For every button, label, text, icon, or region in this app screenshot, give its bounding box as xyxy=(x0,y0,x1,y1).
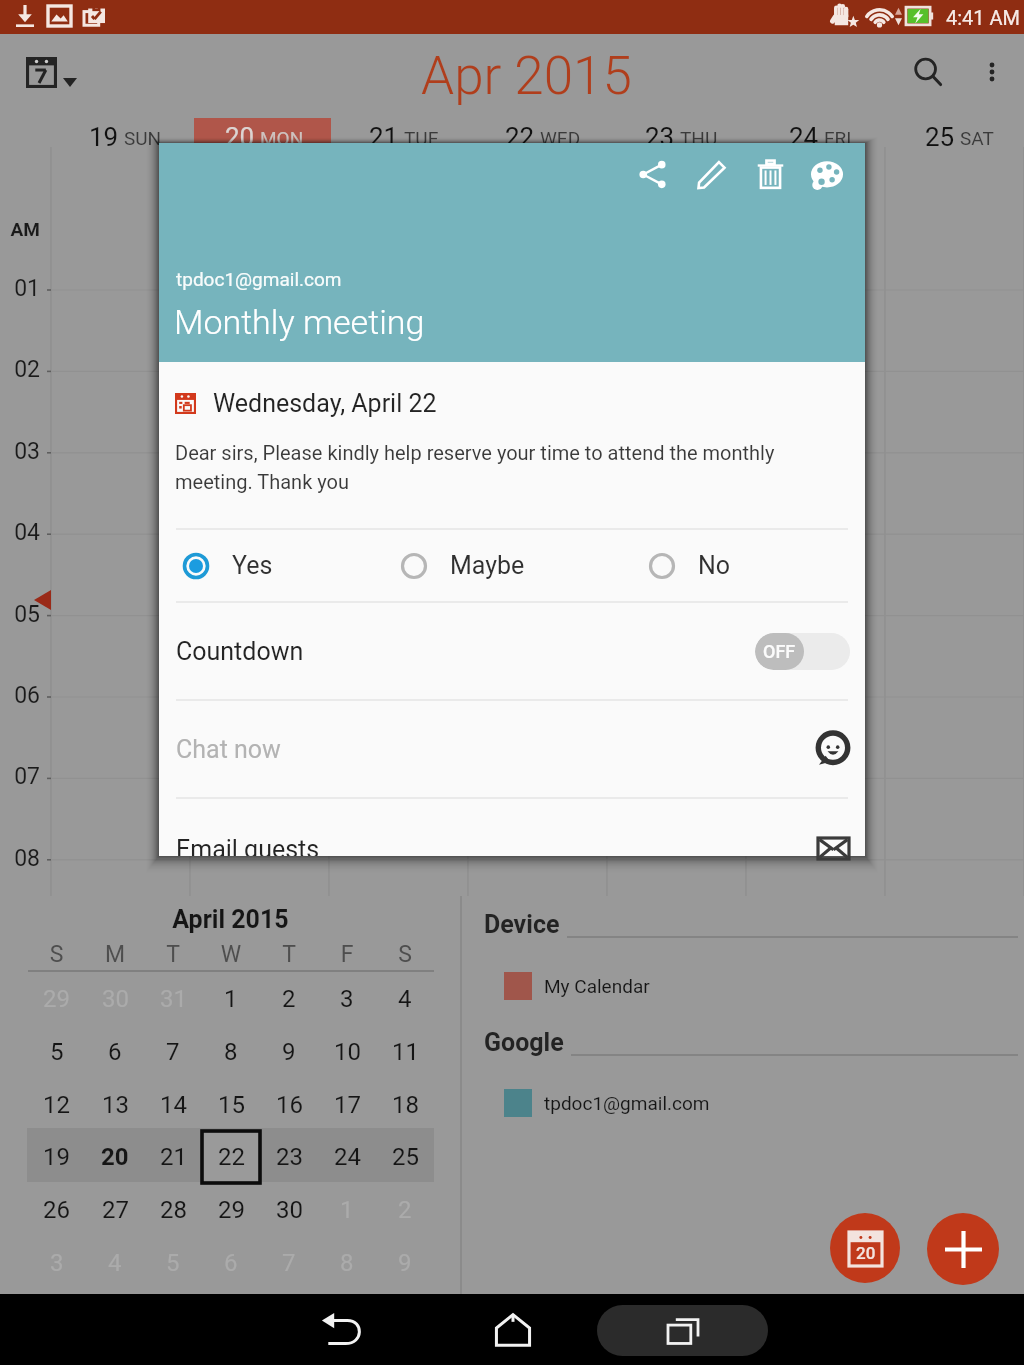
staticText: S xyxy=(27,941,86,968)
button[interactable]: Maybe xyxy=(397,529,597,602)
button[interactable]: 22 xyxy=(473,122,612,150)
button[interactable]: Add event xyxy=(927,1213,999,1285)
staticText: SAT xyxy=(960,127,994,149)
staticText: S xyxy=(376,941,434,968)
button[interactable]: Delete xyxy=(742,146,798,202)
button[interactable]: Recent apps xyxy=(597,1305,768,1356)
staticText: 13 xyxy=(102,1091,129,1119)
button[interactable]: 20 xyxy=(86,1131,144,1183)
staticText: 04 xyxy=(0,519,40,546)
button[interactable]: 19 xyxy=(56,122,195,150)
button[interactable]: 6 xyxy=(86,1026,144,1078)
button[interactable]: 23 xyxy=(612,122,751,150)
button[interactable]: 10 xyxy=(318,1026,376,1078)
button[interactable]: 21 xyxy=(144,1131,202,1183)
button[interactable]: 30 xyxy=(86,973,144,1025)
button[interactable]: No xyxy=(645,529,795,602)
button[interactable]: Email guests xyxy=(159,798,865,856)
button[interactable]: 17 xyxy=(318,1079,376,1131)
button[interactable]: tpdoc1@gmail.com xyxy=(483,1081,983,1125)
staticText: 31 xyxy=(160,985,187,1013)
button[interactable]: 11 xyxy=(376,1026,434,1078)
staticText: 21 xyxy=(369,122,399,150)
button[interactable]: 25 xyxy=(376,1131,434,1183)
button[interactable]: Search xyxy=(902,46,954,98)
staticText: WED xyxy=(540,127,581,149)
button[interactable]: 14 xyxy=(144,1079,202,1131)
button[interactable]: 15 xyxy=(202,1079,260,1131)
button[interactable]: 25 xyxy=(890,122,1024,150)
button[interactable]: 30 xyxy=(260,1184,318,1236)
button[interactable]: 18 xyxy=(376,1079,434,1131)
button[interactable]: 28 xyxy=(144,1184,202,1236)
button[interactable]: Switch view xyxy=(26,51,77,93)
staticText: 30 xyxy=(276,1196,303,1224)
button[interactable]: 13 xyxy=(86,1079,144,1131)
button[interactable]: 16 xyxy=(260,1079,318,1131)
staticText: 1 xyxy=(224,985,238,1013)
button[interactable]: 1 xyxy=(202,973,260,1025)
button[interactable]: Home xyxy=(469,1302,557,1358)
button[interactable]: Chat now xyxy=(159,700,865,798)
button[interactable]: 9 xyxy=(260,1026,318,1078)
button[interactable]: Share xyxy=(624,146,680,202)
button[interactable]: 23 xyxy=(260,1131,318,1183)
staticText: 2 xyxy=(398,1196,412,1224)
button[interactable]: 31 xyxy=(144,973,202,1025)
button[interactable]: 27 xyxy=(86,1184,144,1236)
button[interactable]: My Calendar xyxy=(483,964,983,1008)
button[interactable]: 29 xyxy=(202,1184,260,1236)
staticText: 16 xyxy=(276,1091,303,1119)
staticText: 6 xyxy=(224,1249,238,1277)
button[interactable]: More options xyxy=(970,50,1014,94)
button[interactable]: 22 xyxy=(202,1131,260,1183)
staticText: 10 xyxy=(334,1038,361,1066)
staticText: 7 xyxy=(166,1038,180,1066)
button[interactable]: 3 xyxy=(318,973,376,1025)
button[interactable]: 12 xyxy=(27,1079,86,1131)
staticText: T xyxy=(144,941,202,968)
staticText: Maybe xyxy=(450,551,525,580)
button[interactable]: 20 xyxy=(195,122,334,150)
button[interactable]: 24 xyxy=(318,1131,376,1183)
button[interactable]: Back xyxy=(299,1302,387,1358)
button[interactable]: 29 xyxy=(27,973,86,1025)
staticText: 29 xyxy=(43,985,70,1013)
staticText: 24 xyxy=(334,1143,361,1171)
button[interactable]: 2 xyxy=(260,973,318,1025)
button[interactable]: Change colour xyxy=(799,146,855,202)
button[interactable]: 21 xyxy=(334,122,473,150)
button[interactable]: 8 xyxy=(202,1026,260,1078)
staticText: 20 xyxy=(225,122,255,150)
button[interactable]: Go to today xyxy=(830,1213,900,1283)
button[interactable]: 19 xyxy=(27,1131,86,1183)
staticText: T xyxy=(260,941,318,968)
staticText: 22 xyxy=(218,1143,245,1171)
button[interactable]: Edit xyxy=(683,146,739,202)
staticText: Apr 2015 xyxy=(421,45,632,107)
staticText: No xyxy=(698,551,731,580)
button[interactable]: OFF xyxy=(755,633,850,670)
staticText: 05 xyxy=(0,601,40,628)
button[interactable]: 26 xyxy=(27,1184,86,1236)
button[interactable]: 5 xyxy=(27,1026,86,1078)
staticText: 8 xyxy=(224,1038,238,1066)
button[interactable]: 7 xyxy=(144,1026,202,1078)
staticText: tpdoc1@gmail.com xyxy=(176,268,342,290)
staticText: Yes xyxy=(232,551,273,580)
button[interactable]: 24 xyxy=(751,122,890,150)
staticText: 23 xyxy=(276,1143,303,1171)
staticText: 3 xyxy=(50,1249,64,1277)
button[interactable]: Yes xyxy=(179,529,369,602)
staticText: F xyxy=(318,941,376,968)
button[interactable]: 4 xyxy=(376,973,434,1025)
